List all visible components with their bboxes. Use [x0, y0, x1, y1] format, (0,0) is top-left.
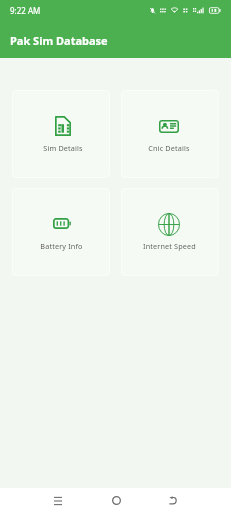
staticText: Internet Speed: [143, 241, 196, 251]
button[interactable]: Recent apps: [47, 489, 69, 511]
button[interactable]: Internet Speed: [121, 188, 219, 276]
button[interactable]: Sim Details: [12, 90, 110, 178]
button[interactable]: Battery Info: [12, 188, 110, 276]
staticText: Battery Info: [40, 241, 83, 251]
button[interactable]: Cnic Details: [121, 90, 219, 178]
button[interactable]: Back: [162, 489, 184, 511]
staticText: Pak Sim Database: [10, 33, 108, 48]
staticText: Sim Details: [43, 143, 83, 153]
staticText: Cnic Details: [148, 143, 190, 153]
staticText: 9:22 AM: [10, 5, 41, 16]
button[interactable]: Home: [105, 489, 127, 511]
